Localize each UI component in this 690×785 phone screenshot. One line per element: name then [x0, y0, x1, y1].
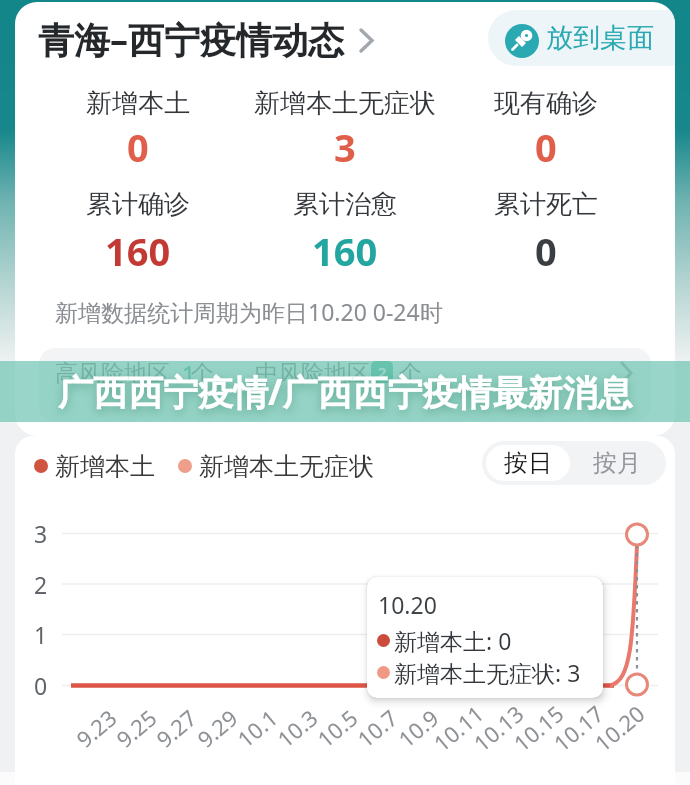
- staticText: 按日: [504, 448, 552, 478]
- staticText: 0: [34, 670, 48, 701]
- staticText: 累计死亡: [494, 188, 598, 221]
- button[interactable]: 高风险地区: [39, 348, 651, 422]
- staticText: 10.13: [467, 698, 530, 757]
- staticText: 高风险地区: [55, 359, 170, 388]
- staticText: 新增本土: 0: [394, 625, 512, 655]
- staticText: 9.27: [149, 702, 202, 754]
- staticText: 个: [399, 359, 422, 388]
- staticText: 0: [535, 121, 557, 167]
- staticText: 3: [334, 121, 356, 167]
- staticText: 新增本土: [55, 451, 155, 482]
- staticText: 9.29: [190, 702, 243, 754]
- staticText: 新增本土无症状: [254, 87, 436, 120]
- staticText: 10.7: [350, 702, 403, 754]
- staticText: 新增本土无症状: 3: [394, 657, 581, 687]
- staticText: 10.5: [310, 702, 363, 754]
- staticText: 3: [34, 518, 48, 549]
- staticText: 放到桌面: [546, 21, 654, 55]
- staticText: 160: [312, 225, 378, 271]
- staticText: 10.1: [230, 702, 283, 754]
- staticText: 1: [34, 619, 48, 650]
- staticText: 9.23: [69, 702, 122, 754]
- staticText: 累计治愈: [293, 188, 397, 221]
- button[interactable]: 放到桌面: [488, 10, 675, 66]
- staticText: 2: [378, 362, 387, 382]
- staticText: 新增本土: [86, 87, 190, 120]
- staticText: 10.9: [391, 702, 444, 754]
- staticText: 个: [191, 359, 214, 388]
- staticText: 新增数据统计周期为昨日10.20 0-24时: [55, 296, 443, 327]
- button[interactable]: [38, 12, 403, 67]
- staticText: 10.17: [547, 698, 610, 757]
- staticText: 10.15: [507, 698, 570, 757]
- staticText: 10.3: [270, 702, 323, 754]
- staticText: 现有确诊: [494, 87, 598, 120]
- button[interactable]: 按日: [486, 445, 570, 481]
- staticText: 新增本土无症状: [199, 451, 374, 482]
- staticText: 10.11: [427, 698, 490, 757]
- staticText: 1: [182, 358, 196, 389]
- staticText: 10.20: [588, 698, 651, 757]
- staticText: 0: [535, 225, 557, 271]
- staticText: 累计确诊: [86, 188, 190, 221]
- staticText: 中风险地区: [255, 359, 370, 388]
- staticText: 2: [34, 569, 48, 600]
- button[interactable]: 按月: [577, 445, 657, 481]
- staticText: 广西西宁疫情/广西西宁疫情最新消息: [58, 368, 633, 416]
- staticText: 160: [105, 225, 171, 271]
- staticText: 青海–西宁疫情动态: [38, 15, 344, 64]
- staticText: 9.25: [109, 702, 162, 754]
- staticText: 按月: [593, 448, 641, 478]
- staticText: 10.20: [378, 589, 437, 619]
- staticText: 0: [127, 121, 149, 167]
